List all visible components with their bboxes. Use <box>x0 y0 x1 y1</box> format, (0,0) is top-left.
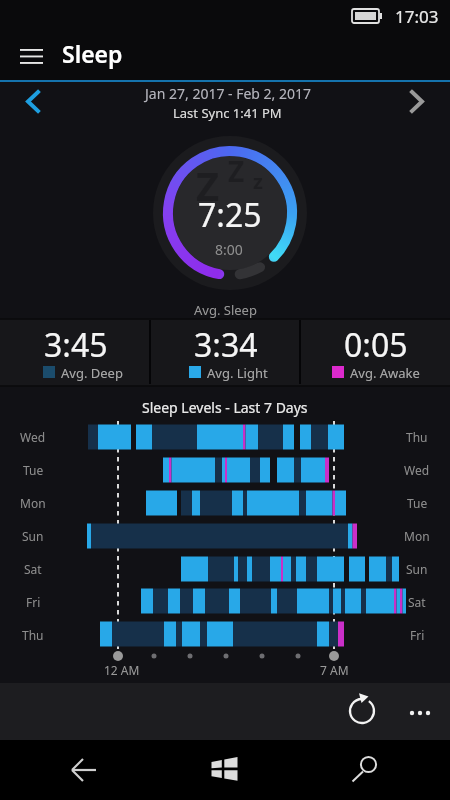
staticText: Z <box>228 152 245 190</box>
button[interactable] <box>340 689 384 733</box>
staticText: Sat <box>24 561 42 577</box>
staticText: Sleep Levels - Last 7 Days <box>142 398 308 417</box>
staticText: Last Sync 1:41 PM <box>173 104 282 122</box>
staticText: Mon <box>404 528 430 544</box>
button[interactable] <box>202 746 246 790</box>
staticText: 7 AM <box>320 662 349 678</box>
staticText: Fri <box>26 594 41 610</box>
staticText: Sat <box>408 594 426 610</box>
staticText: Avg. Awake <box>350 364 420 382</box>
staticText: Fri <box>410 627 425 643</box>
staticText: Mon <box>20 495 46 511</box>
staticText: Z <box>196 158 220 212</box>
button[interactable] <box>62 748 106 792</box>
staticText: Sun <box>406 561 428 577</box>
staticText: 3:34 <box>194 323 258 363</box>
button[interactable] <box>346 742 390 786</box>
staticText: Thu <box>22 627 44 643</box>
staticText: Sleep <box>62 38 123 69</box>
staticText: 12 AM <box>104 662 140 678</box>
staticText: z <box>253 168 263 195</box>
button[interactable] <box>16 84 50 118</box>
staticText: Tue <box>23 462 44 478</box>
staticText: Sun <box>22 528 44 544</box>
staticText: Avg. Deep <box>61 364 123 382</box>
staticText: Jan 27, 2017 - Feb 2, 2017 <box>145 84 312 103</box>
staticText: 8:00 <box>215 240 243 259</box>
staticText: 3:45 <box>44 323 108 363</box>
staticText: 7:25 <box>198 193 262 233</box>
staticText: 0:05 <box>344 323 408 363</box>
button[interactable] <box>10 40 54 74</box>
staticText: Avg. Light <box>207 364 268 382</box>
staticText: Wed <box>404 462 430 478</box>
staticText: Tue <box>407 495 428 511</box>
staticText: Wed <box>20 429 46 445</box>
staticText: Avg. Sleep <box>194 301 257 319</box>
staticText: 17:03 <box>395 5 439 28</box>
button[interactable] <box>398 689 442 733</box>
staticText: Thu <box>406 429 428 445</box>
button[interactable] <box>402 84 436 118</box>
